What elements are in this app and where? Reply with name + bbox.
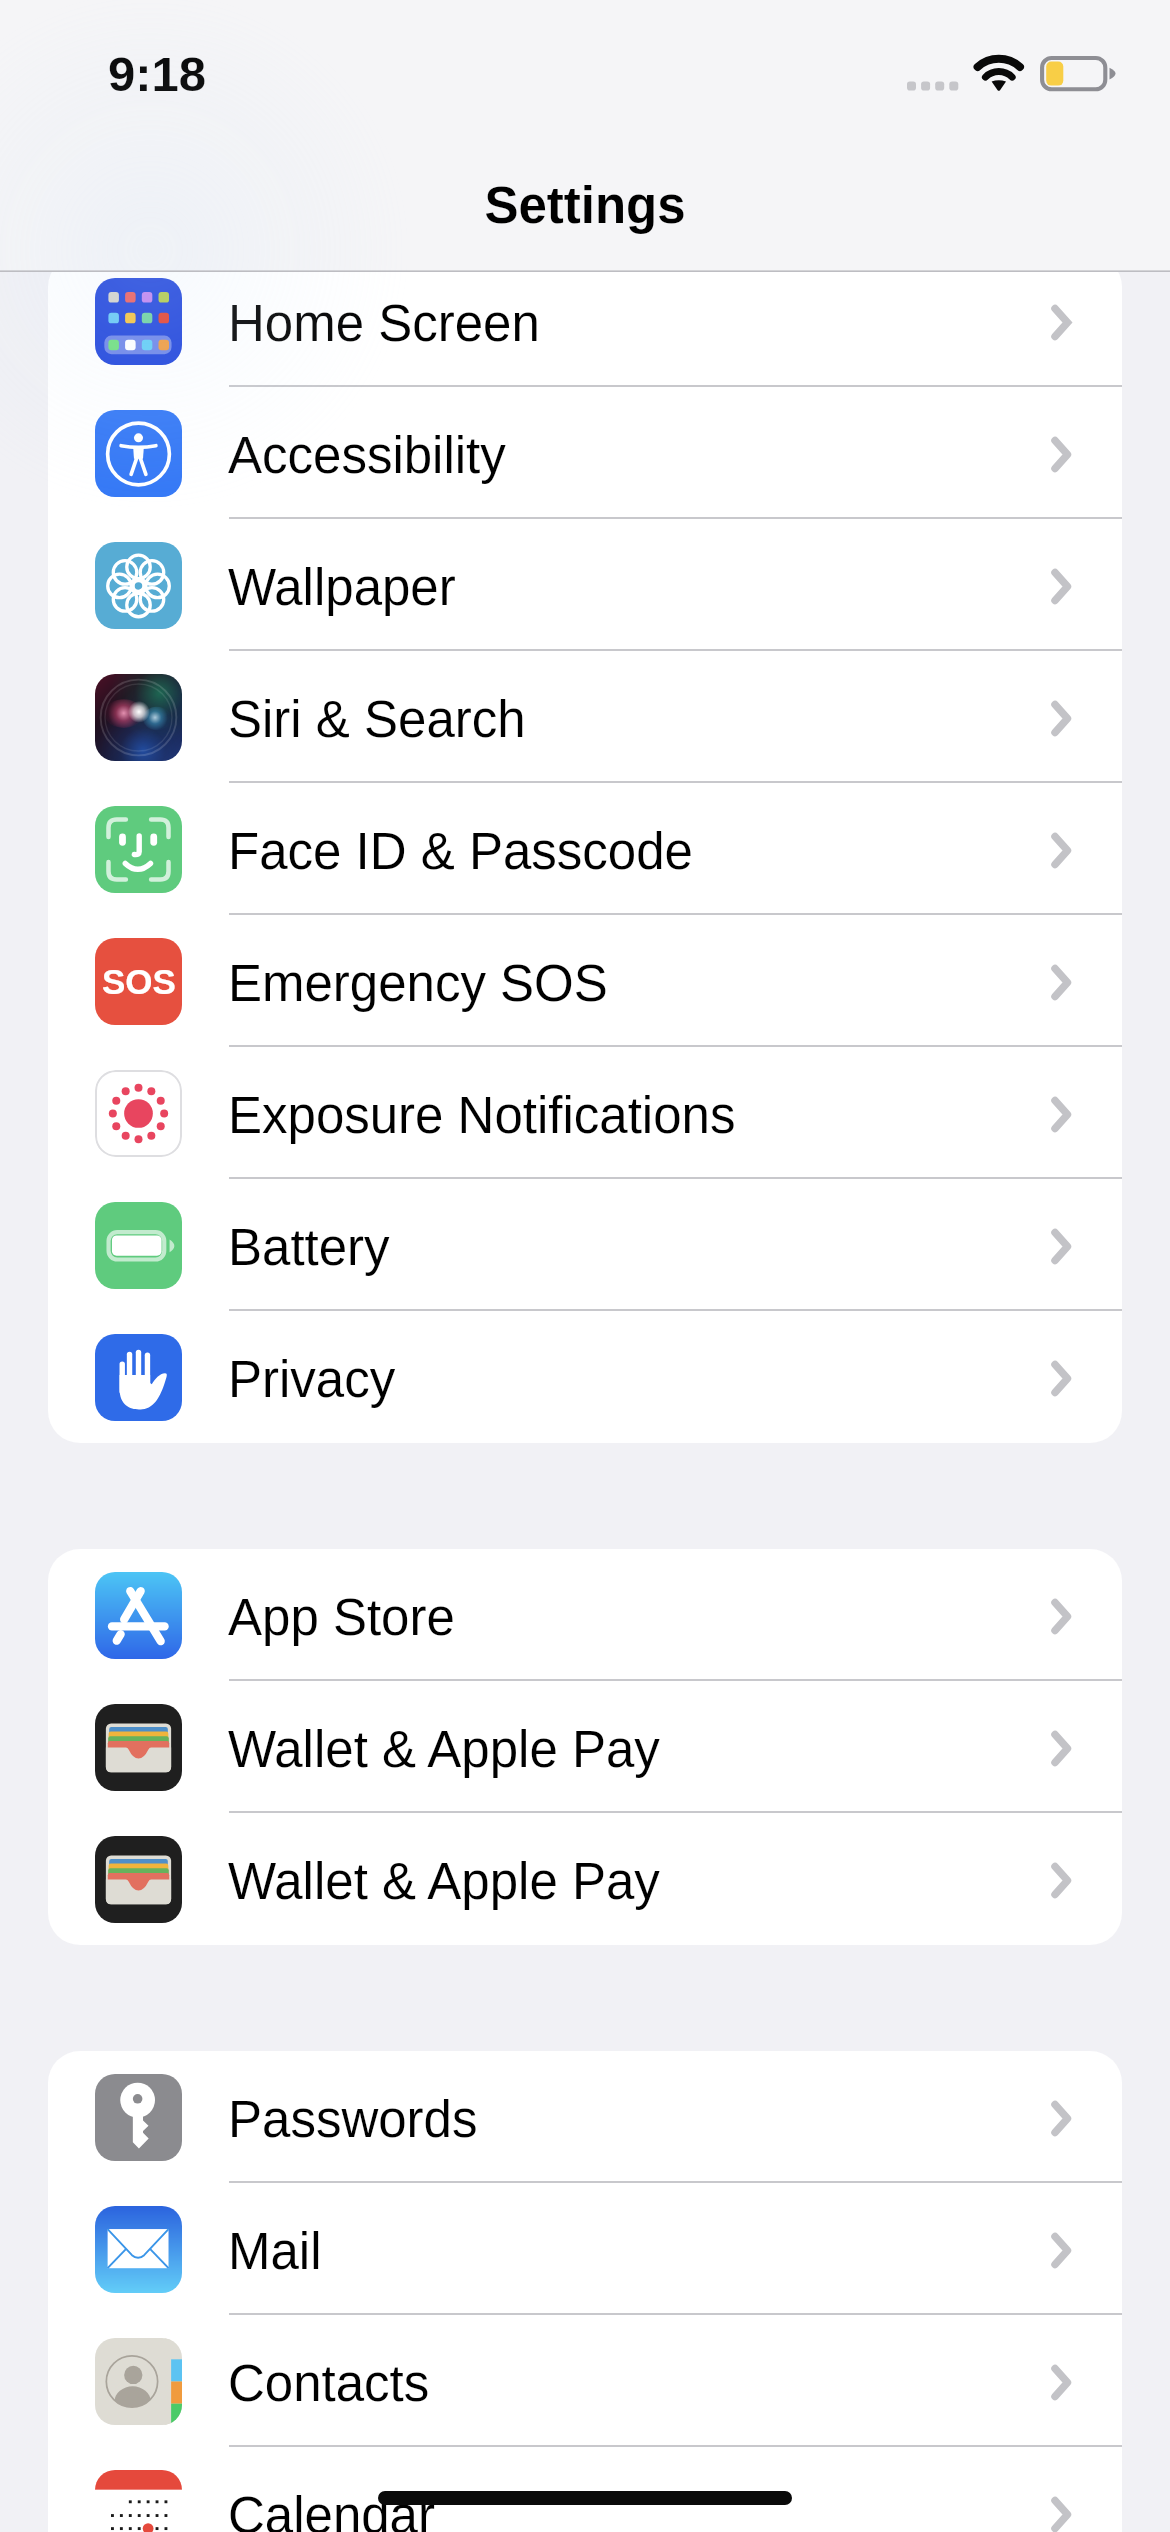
button[interactable]: Accessibility bbox=[48, 387, 1122, 519]
button[interactable]: Face ID & Passcode bbox=[48, 783, 1122, 915]
staticText: App Store bbox=[228, 1589, 455, 1646]
staticText: Siri & Search bbox=[228, 691, 526, 748]
button[interactable]: Home Screen bbox=[48, 255, 1122, 387]
button[interactable]: Exposure Notifications bbox=[48, 1047, 1122, 1179]
staticText: Wallpaper bbox=[228, 559, 456, 616]
staticText: Calendar bbox=[228, 2487, 435, 2532]
button[interactable]: Calendar bbox=[48, 2447, 1122, 2532]
button[interactable]: Privacy bbox=[48, 1311, 1122, 1443]
button[interactable]: Battery bbox=[48, 1179, 1122, 1311]
staticText: Home Screen bbox=[228, 295, 540, 352]
staticText: Passwords bbox=[228, 2091, 478, 2148]
button[interactable]: Wallet & Apple Pay bbox=[48, 1813, 1122, 1945]
button[interactable]: Passwords bbox=[48, 2051, 1122, 2183]
staticText: Battery bbox=[228, 1219, 390, 1276]
staticText: Mail bbox=[228, 2223, 322, 2280]
button[interactable]: App Store bbox=[48, 1549, 1122, 1681]
staticText: Wallet & Apple Pay bbox=[228, 1721, 660, 1778]
button[interactable]: Contacts bbox=[48, 2315, 1122, 2447]
button[interactable]: Siri & Search bbox=[48, 651, 1122, 783]
staticText: Emergency SOS bbox=[228, 955, 608, 1012]
staticText: 9:18 bbox=[108, 47, 207, 102]
button[interactable]: Wallet & Apple Pay bbox=[48, 1681, 1122, 1813]
staticText: Face ID & Passcode bbox=[228, 823, 693, 880]
staticText: Exposure Notifications bbox=[228, 1087, 736, 1144]
button[interactable]: Emergency SOS bbox=[48, 915, 1122, 1047]
staticText: SOS bbox=[102, 962, 176, 1001]
button[interactable]: Wallpaper bbox=[48, 519, 1122, 651]
staticText: Privacy bbox=[228, 1351, 396, 1408]
staticText: Wallet & Apple Pay bbox=[228, 1853, 660, 1910]
staticText: Contacts bbox=[228, 2355, 430, 2412]
staticText: Settings bbox=[0, 177, 1170, 234]
button[interactable]: Mail bbox=[48, 2183, 1122, 2315]
staticText: Accessibility bbox=[228, 427, 506, 484]
